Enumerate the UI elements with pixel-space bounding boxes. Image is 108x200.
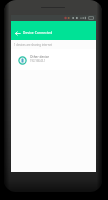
staticText: Device Connected (23, 31, 53, 35)
button[interactable]: Other device (11, 49, 96, 70)
staticText: 192.168.43.1 (30, 59, 46, 63)
staticText: Other device (30, 55, 50, 59)
button[interactable]: Navigate up (11, 21, 96, 40)
button[interactable]: Navigate up (12, 27, 24, 40)
staticText: 1 devices are sharing internet (14, 43, 52, 47)
